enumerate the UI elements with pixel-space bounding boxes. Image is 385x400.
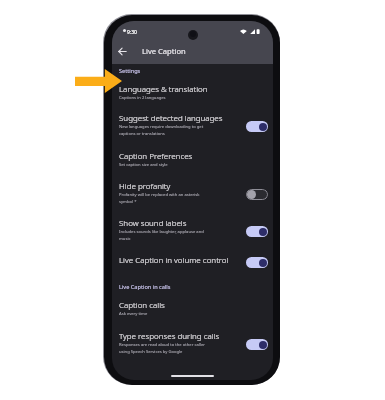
staticText: New languages require downloading to get [119, 124, 204, 130]
staticText: Live Caption in volume control [119, 254, 229, 265]
staticText: Set caption size and style [119, 162, 168, 168]
staticText: Caption calls [119, 299, 165, 310]
button[interactable]: Back [114, 43, 130, 59]
staticText: Ask every time [119, 311, 148, 317]
button[interactable]: Caption calls [112, 295, 273, 324]
button[interactable]: Languages & translation [112, 79, 273, 108]
button[interactable]: Suggest detected languages [112, 108, 273, 144]
staticText: Caption Preferences [119, 150, 193, 161]
staticText: Responses are read aloud to the other ca… [119, 342, 205, 348]
staticText: Includes sounds like laughter, applause … [119, 229, 204, 235]
staticText: using Speech Services by Google [119, 349, 183, 355]
staticText: Show sound labels [119, 217, 187, 228]
staticText: Captions in 2 languages [119, 95, 166, 101]
staticText: Live Caption in calls [119, 283, 171, 291]
button[interactable]: Toggle off [246, 189, 268, 200]
button[interactable]: Caption Preferences [112, 146, 273, 175]
staticText: Live Caption [142, 46, 186, 56]
staticText: 9:30 [127, 29, 137, 36]
button[interactable]: Toggle on [246, 339, 268, 350]
staticText: Type responses during calls [119, 330, 220, 341]
staticText: Suggest detected languages [119, 112, 223, 123]
button[interactable]: Live Caption in volume control [112, 250, 273, 274]
staticText: Languages & translation [119, 83, 208, 94]
button[interactable]: Toggle on [246, 257, 268, 268]
button[interactable]: Show sound labels [112, 213, 273, 249]
staticText: Hide profanity [119, 180, 171, 191]
staticText: symbol * [119, 199, 137, 205]
staticText: Settings [119, 67, 141, 75]
button[interactable]: Toggle on [246, 226, 268, 237]
button[interactable]: Toggle on [246, 121, 268, 132]
button[interactable]: Type responses during calls [112, 326, 273, 362]
staticText: music [119, 236, 131, 242]
staticText: captions or translations [119, 131, 165, 137]
button[interactable]: Hide profanity [112, 176, 273, 212]
staticText: Profanity will be replaced with an aster… [119, 192, 200, 198]
